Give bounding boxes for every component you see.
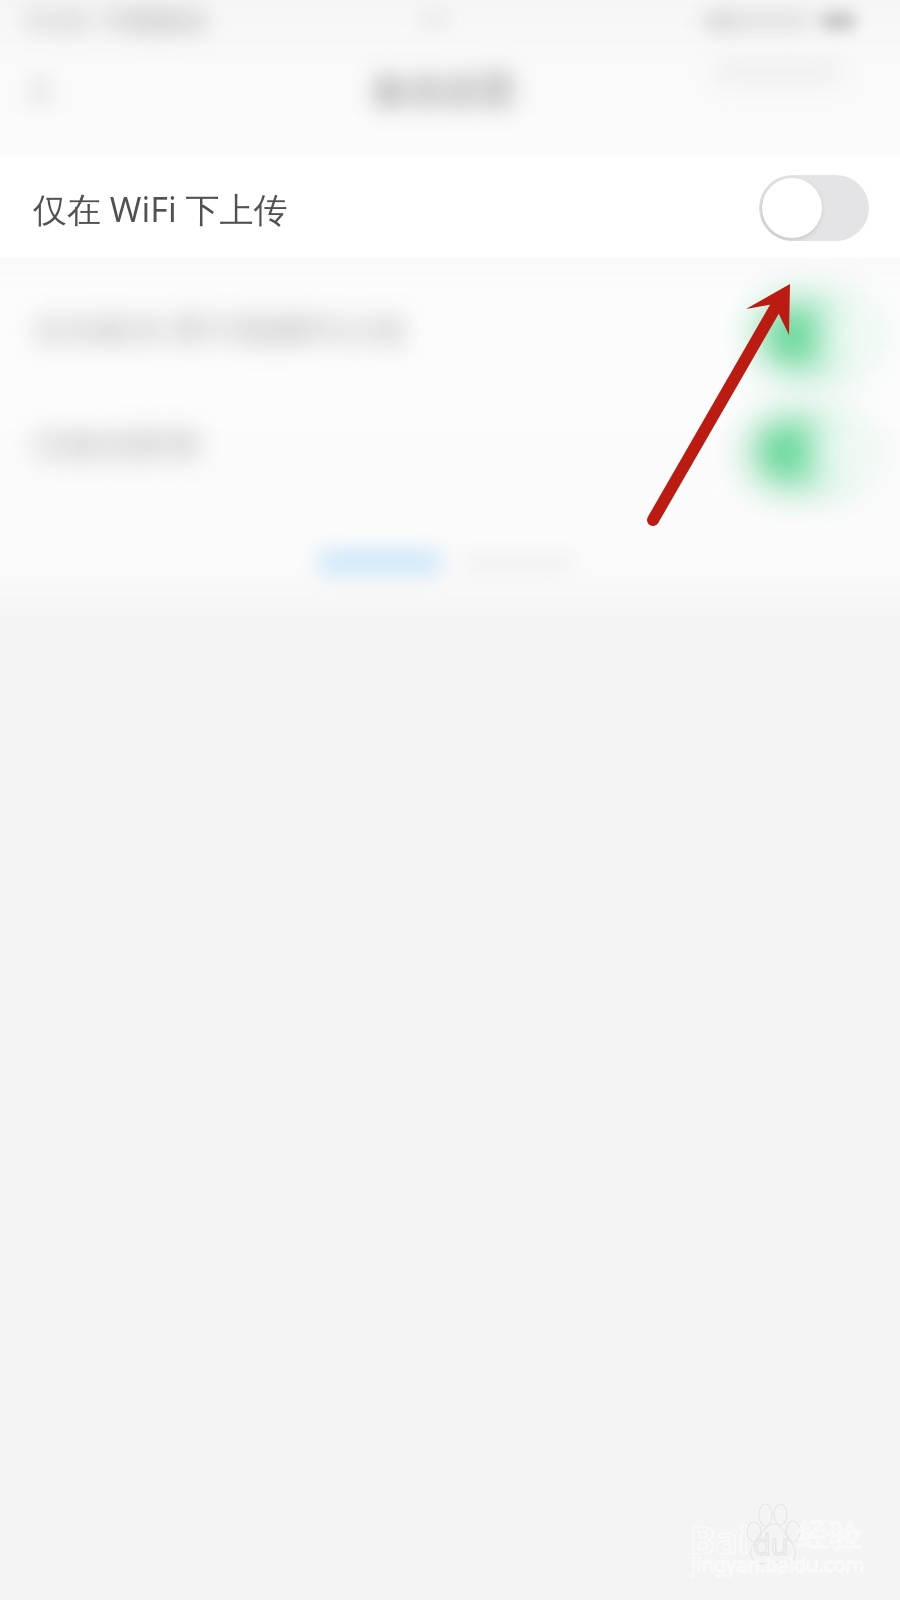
staticText: jingyan.baidu.com — [691, 1551, 865, 1578]
button[interactable]: Auto backup toggle, on — [760, 300, 872, 366]
button[interactable]: New items only toggle, on — [754, 416, 866, 482]
staticText: du — [753, 1524, 789, 1563]
staticText: 4G — [700, 4, 732, 37]
button[interactable]: 仅在 WiFi 下上传 — [0, 157, 900, 258]
button[interactable]: Upload only on WiFi toggle — [759, 175, 869, 241]
staticText: 自动备份 图与视频到云端 — [33, 306, 405, 351]
staticText: 备份设置 — [372, 68, 516, 113]
staticText: 仅备份新增 — [33, 424, 198, 466]
button[interactable]: View backup details — [300, 534, 590, 592]
staticText: 15:32 中国移动 — [22, 2, 206, 38]
button[interactable]: Back up new items only — [0, 374, 900, 490]
button[interactable]: Back up photos and videos to the cloud — [0, 258, 900, 374]
staticText: 仅在 WiFi 下上传 — [33, 186, 288, 232]
